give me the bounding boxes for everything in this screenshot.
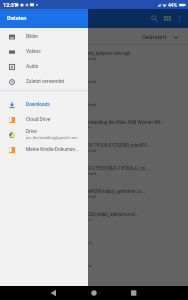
staticText: A Woman's Guide to Unleashing the Wise, …	[44, 120, 165, 125]
staticText: Dateien	[7, 15, 27, 22]
button[interactable]: Meine Kindle-Dokumen...	[0, 142, 88, 157]
button[interactable]: split_conf.apk	[0, 91, 188, 114]
staticText: Geändert	[142, 33, 167, 40]
staticText: Videos	[26, 49, 41, 55]
button[interactable]: com.maps_A	[0, 252, 188, 275]
staticText: 12. Apr. 2023, 18:30 - Android	[44, 148, 97, 153]
staticText: Audio	[26, 64, 39, 70]
staticText: Cloud Drive	[26, 117, 51, 123]
staticText: com.app_6.30_(100300-2755310&2)-195300JJ…	[44, 166, 149, 171]
staticText: 8. Apr. 2023, 10:35 - Androi	[44, 240, 92, 245]
staticText: 12:31	[3, 2, 17, 8]
staticText: drive_7.1.2-29_minAPI23(nodpi)_apkmirror…	[44, 212, 139, 217]
button[interactable]: Audio	[0, 59, 88, 74]
button[interactable]: Zuletzt verwendet	[0, 74, 88, 89]
button[interactable]: A Woman's Guide to Unleashing the Wise, …	[0, 114, 188, 137]
button[interactable]: com.app_6.30_(100300-2755310&2)-195300JJ…	[0, 160, 188, 183]
staticText: 11. Apr. 2023, 20:11 - Android	[44, 171, 97, 176]
button[interactable]: Downloads	[0, 97, 88, 112]
button[interactable]: drive_7.1.2-29_minAPI23(nodpi)_apkmirror…	[0, 206, 188, 229]
button[interactable]: Geändert	[133, 30, 188, 43]
staticText: 14. Apr. 2023, 09:21 - PDF	[44, 125, 90, 130]
button[interactable]: Bilder	[0, 29, 88, 44]
button[interactable]: WhatsApp_2.23.8.5_beta_apkpure.com.apk	[0, 45, 188, 68]
staticText: 9. Apr. 2023, 16:02 - Androi	[44, 217, 92, 222]
button[interactable]: Rasteransicht	[161, 12, 174, 25]
staticText: jon.the.beckling@gmail.com	[26, 135, 78, 140]
staticText: 44%	[168, 2, 178, 8]
staticText: Meine Kindle-Dokumen...	[26, 147, 79, 153]
button[interactable]: base.apk	[0, 68, 188, 91]
button[interactable]: amazon_2352-28_minAPI28(nodpi)_apkmirror…	[0, 183, 188, 206]
button[interactable]: Videos	[0, 44, 88, 59]
staticText: 7. Apr. 2023, 08:12 - Androi	[44, 263, 92, 268]
staticText: 17. Apr. 2023, 11:52 - Android	[44, 102, 97, 107]
staticText: Zuletzt verwendet	[26, 79, 65, 85]
staticText: WhatsApp_2.23.8.5_beta_apkpure.com.apk	[44, 51, 131, 56]
button[interactable]: Cloud Drive	[0, 112, 88, 127]
staticText: 10. Apr. 2023, 14:47 - Android	[44, 194, 97, 199]
staticText: 17. Apr. 2023, 12:04 - Android	[44, 56, 97, 61]
staticText: Drive	[26, 129, 37, 135]
button[interactable]: com.install_5.apk	[0, 229, 188, 252]
staticText: de.app_v4-all_0_PR_276779105-01722000_mi…	[44, 143, 152, 148]
button[interactable]: Suchen	[148, 12, 161, 25]
button[interactable]: Weitere Optionen	[174, 13, 185, 24]
staticText: amazon_2352-28_minAPI28(nodpi)_apkmirror…	[44, 189, 146, 194]
staticText: 17. Apr. 2023, 11:58 - Android	[44, 79, 97, 84]
staticText: Bilder	[26, 34, 39, 40]
staticText: Downloads	[26, 102, 50, 108]
button[interactable]: Drive	[0, 127, 88, 142]
button[interactable]: de.app_v4-all_0_PR_276779105-01722000_mi…	[0, 137, 188, 160]
